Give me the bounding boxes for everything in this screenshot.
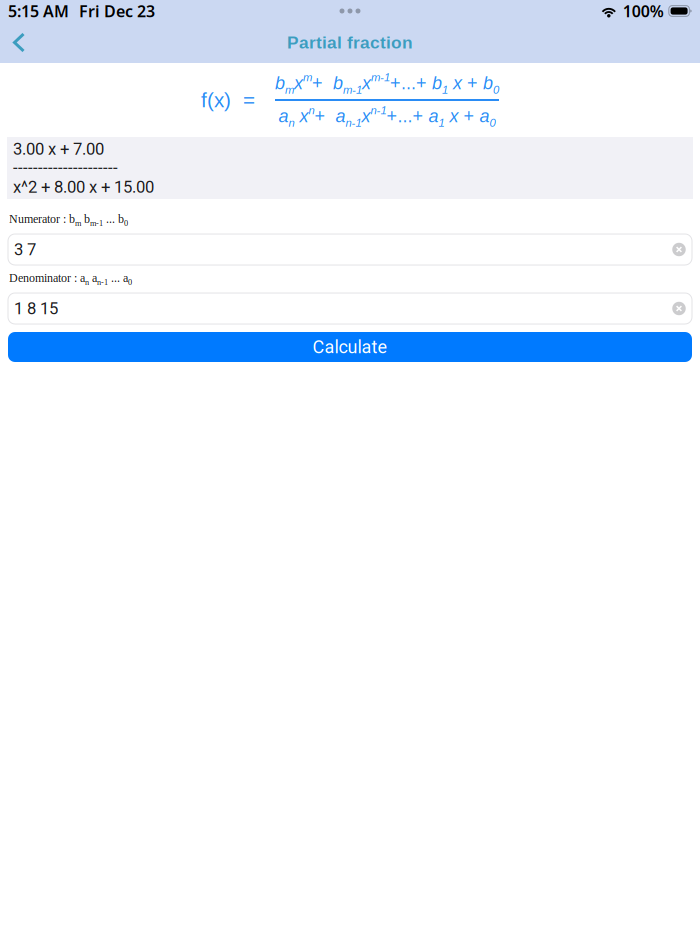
staticText: 5:15 AM: [8, 0, 69, 22]
staticText: Partial fraction: [287, 33, 413, 52]
staticText: 100%: [623, 0, 664, 22]
staticText: x^2 + 8.00 x + 15.00: [13, 177, 154, 197]
staticText: Calculate: [312, 336, 387, 358]
staticText: f(x) =: [201, 88, 255, 112]
staticText: 3 7: [14, 240, 36, 259]
button[interactable]: Back: [0, 24, 38, 61]
staticText: Numerator : bm bm-1 ... b0: [9, 212, 128, 228]
staticText: 1 8 15: [14, 299, 58, 318]
button[interactable]: Calculate: [0, 332, 700, 362]
staticText: Fri Dec 23: [79, 0, 155, 22]
staticText: ---------------------: [13, 158, 118, 178]
staticText: an xn+ an-1xn-1+...+ a1 x + a0: [278, 104, 495, 129]
button[interactable]: Clear text: [666, 236, 692, 262]
staticText: 3.00 x + 7.00: [13, 139, 104, 159]
staticText: Denominator : an an-1 ... a0: [9, 271, 132, 287]
button[interactable]: Clear text: [666, 295, 692, 321]
staticText: bmxm+ bm-1xm-1+...+ b1 x + b0: [275, 71, 499, 96]
